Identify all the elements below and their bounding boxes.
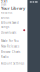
button[interactable]: Artists bbox=[1, 16, 9, 19]
staticText: 9:41 bbox=[1, 0, 8, 3]
staticText: Songs bbox=[1, 25, 9, 29]
button[interactable]: Songs bbox=[1, 25, 9, 29]
button[interactable]: Account Settings bbox=[1, 62, 24, 65]
button[interactable]: Recents bbox=[1, 11, 12, 14]
staticText: Back bbox=[1, 3, 6, 6]
button[interactable]: Made For You bbox=[1, 39, 19, 43]
button[interactable]: Albums Saved bbox=[1, 21, 19, 24]
staticText: Radio bbox=[1, 55, 9, 59]
staticText: Albums Saved bbox=[1, 21, 19, 24]
button[interactable]: Downloads bbox=[1, 31, 16, 34]
button[interactable]: Browse Charts bbox=[1, 50, 20, 54]
button[interactable]: Radio bbox=[1, 55, 9, 59]
staticText: Browse Charts bbox=[1, 50, 20, 54]
staticText: Your Library bbox=[1, 6, 25, 11]
staticText: Artists bbox=[1, 16, 9, 19]
staticText: New Releases bbox=[1, 45, 19, 48]
button[interactable]: Your Library bbox=[1, 6, 25, 11]
staticText: Made For You bbox=[1, 39, 19, 43]
button[interactable]: 9:41 bbox=[1, 0, 8, 3]
staticText: Recents bbox=[1, 11, 12, 14]
button[interactable]: New Releases bbox=[1, 45, 19, 48]
staticText: Account Settings bbox=[1, 62, 24, 65]
button[interactable]: Back bbox=[1, 3, 6, 6]
staticText: Downloads bbox=[1, 31, 16, 34]
